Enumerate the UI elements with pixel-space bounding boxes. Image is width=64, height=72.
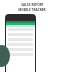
button[interactable] (8, 53, 33, 56)
staticText: SALES REPORT (21, 3, 44, 7)
staticText: MOBILE TRACKER (18, 8, 46, 12)
button[interactable] (8, 48, 33, 51)
